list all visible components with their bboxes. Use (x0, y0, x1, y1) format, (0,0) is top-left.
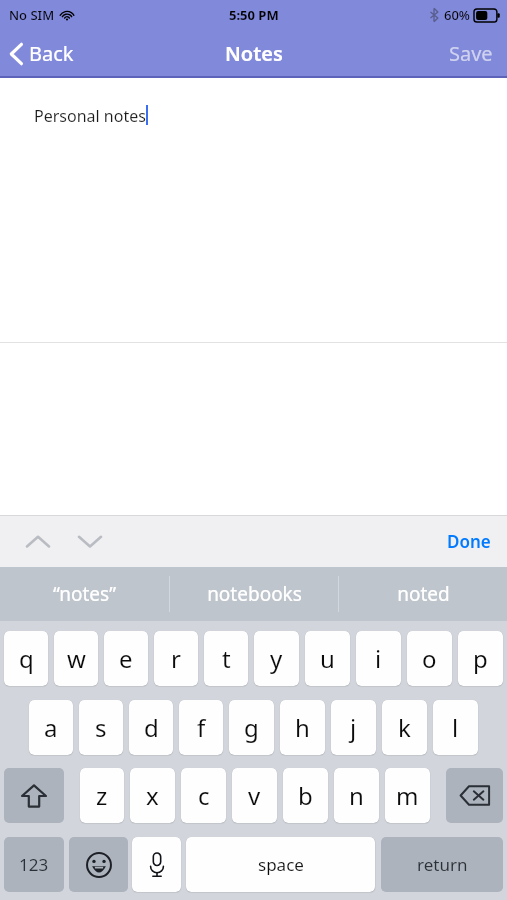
button[interactable]: Backspace (446, 768, 503, 823)
staticText: s (95, 711, 107, 744)
staticText: k (398, 711, 411, 744)
staticText: m (396, 779, 419, 812)
staticText: space (258, 853, 304, 876)
staticText: u (320, 642, 335, 675)
button[interactable]: g (229, 700, 274, 755)
button[interactable]: m (385, 768, 430, 823)
staticText: a (44, 711, 58, 744)
button[interactable]: v (232, 768, 277, 823)
staticText: Done (447, 530, 491, 553)
staticText: Back (29, 40, 74, 67)
button[interactable]: b (283, 768, 328, 823)
staticText: j (350, 711, 357, 744)
button[interactable]: space (186, 837, 375, 892)
staticText: d (144, 711, 159, 744)
staticText: t (222, 642, 231, 675)
button[interactable]: i (356, 631, 401, 686)
button[interactable]: f (179, 700, 223, 755)
button[interactable]: Dictation (132, 837, 181, 892)
button[interactable]: a (29, 700, 73, 755)
button[interactable]: d (129, 700, 173, 755)
staticText: g (244, 711, 259, 744)
staticText: r (171, 642, 181, 675)
button[interactable]: noted (339, 567, 507, 621)
staticText: f (197, 711, 206, 744)
button[interactable]: j (331, 700, 376, 755)
button[interactable]: Previous field (18, 527, 58, 556)
button[interactable]: n (334, 768, 379, 823)
button[interactable]: s (79, 700, 123, 755)
button[interactable]: u (305, 631, 350, 686)
button[interactable]: k (382, 700, 427, 755)
staticText: e (119, 642, 133, 675)
staticText: c (198, 779, 210, 812)
button[interactable]: “notes” (0, 567, 169, 621)
button[interactable]: e (104, 631, 148, 686)
button[interactable]: Back (0, 34, 88, 73)
button[interactable]: p (458, 631, 503, 686)
staticText: l (452, 711, 459, 744)
staticText: b (298, 779, 313, 812)
button[interactable]: y (254, 631, 299, 686)
staticText: y (270, 642, 283, 675)
staticText: 123 (19, 853, 49, 876)
button[interactable]: q (4, 631, 48, 686)
staticText: w (67, 642, 86, 675)
button[interactable]: Done (431, 520, 507, 563)
staticText: z (96, 779, 108, 812)
staticText: x (146, 779, 159, 812)
button[interactable]: z (80, 768, 124, 823)
button[interactable]: x (130, 768, 175, 823)
staticText: “notes” (53, 581, 116, 607)
staticText: notebooks (207, 581, 302, 607)
staticText: h (295, 711, 310, 744)
staticText: 60% (444, 6, 470, 24)
button[interactable]: Next field (70, 527, 110, 556)
staticText: n (349, 779, 364, 812)
button[interactable]: Shift (4, 768, 64, 823)
staticText: i (375, 642, 382, 675)
staticText: q (19, 642, 34, 675)
button[interactable]: c (181, 768, 226, 823)
staticText: v (248, 779, 261, 812)
staticText: No SIM (9, 6, 55, 24)
button[interactable]: return (381, 837, 503, 892)
button[interactable]: h (280, 700, 325, 755)
staticText: p (473, 642, 488, 675)
button[interactable]: notebooks (170, 567, 338, 621)
button[interactable]: l (433, 700, 478, 755)
staticText: return (417, 853, 468, 876)
button[interactable]: t (204, 631, 248, 686)
staticText: Save (449, 40, 493, 67)
button[interactable]: Emoji keyboard (69, 837, 128, 892)
staticText: 5:50 PM (229, 6, 279, 24)
button[interactable]: w (54, 631, 98, 686)
staticText: o (422, 642, 437, 675)
button[interactable]: r (154, 631, 198, 686)
staticText: noted (397, 581, 450, 607)
staticText: Personal notes (34, 105, 146, 127)
button[interactable]: o (407, 631, 452, 686)
button[interactable]: Save (435, 32, 507, 75)
staticText: Notes (225, 40, 283, 67)
button[interactable]: 123 (4, 837, 64, 892)
